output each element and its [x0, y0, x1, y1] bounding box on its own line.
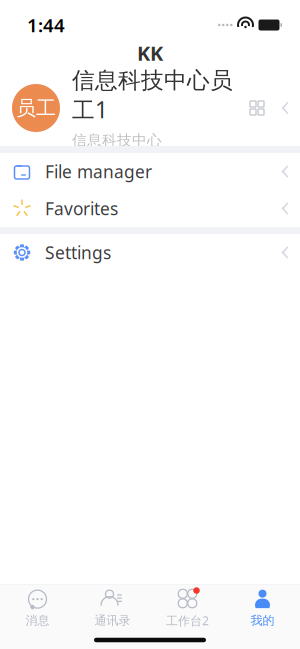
- button[interactable]: 工作台2: [150, 586, 225, 630]
- staticText: 通讯录: [94, 613, 130, 628]
- staticText: 消息: [25, 613, 49, 628]
- staticText: 信息科技中心: [72, 131, 162, 149]
- button[interactable]: 通讯录: [75, 586, 150, 630]
- staticText: 1:44: [27, 13, 65, 37]
- staticText: 我的: [250, 613, 274, 628]
- staticText: Settings: [45, 241, 111, 264]
- staticText: Favorites: [45, 197, 118, 220]
- button[interactable]: 我的: [225, 586, 300, 630]
- button[interactable]: 消息: [0, 586, 75, 630]
- staticText: File manager: [45, 160, 152, 183]
- button[interactable]: Favorites: [0, 190, 300, 227]
- staticText: 工作台2: [166, 612, 209, 628]
- button[interactable]: 员工: [0, 70, 300, 146]
- button[interactable]: File manager: [0, 153, 300, 190]
- button[interactable]: Settings: [0, 234, 300, 271]
- staticText: 信息科技中心员工1: [72, 66, 233, 124]
- staticText: 员工: [16, 96, 56, 120]
- staticText: KK: [137, 40, 163, 66]
